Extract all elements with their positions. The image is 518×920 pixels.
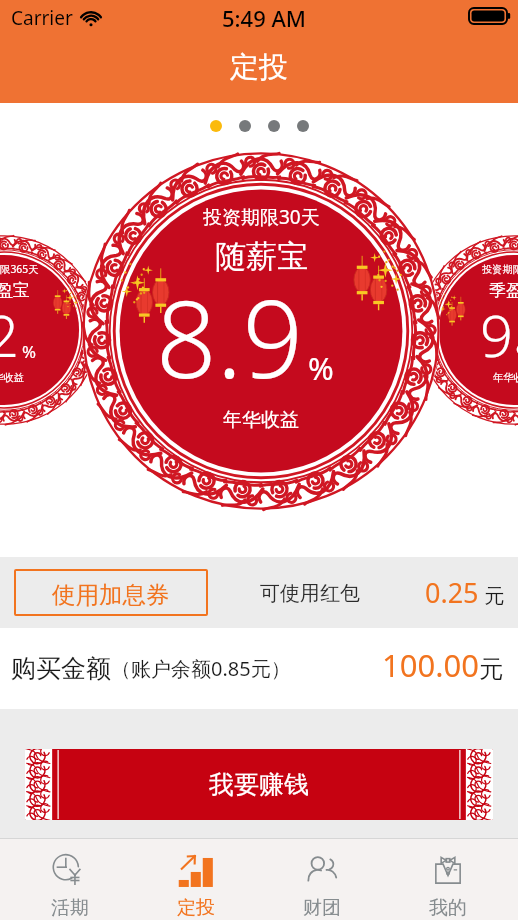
- staticText: 使用加息券: [52, 580, 170, 610]
- staticText: 定投: [177, 896, 215, 920]
- staticText: 财团: [303, 896, 341, 920]
- other: 我的: [429, 852, 467, 890]
- staticText: 长盈宝: [0, 280, 30, 301]
- staticText: 0.25: [425, 574, 479, 611]
- staticText: %: [308, 347, 334, 389]
- staticText: 年华收益: [493, 371, 518, 384]
- button[interactable]: 我的: [392, 839, 504, 920]
- staticText: 元: [479, 654, 503, 684]
- staticText: 元: [479, 582, 505, 609]
- staticText: 5:49 AM: [222, 3, 307, 33]
- staticText: %: [516, 340, 518, 363]
- staticText: 年华收益: [223, 408, 299, 432]
- other: 财团: [303, 852, 341, 890]
- button[interactable]: 定投: [140, 839, 252, 920]
- staticText: 8.9: [156, 265, 303, 409]
- staticText: 投资期限90天: [482, 262, 518, 276]
- button[interactable]: 财团: [266, 839, 378, 920]
- other: 活期: [51, 852, 89, 890]
- button[interactable]: 使用加息券: [14, 569, 208, 616]
- staticText: 定投: [230, 49, 288, 86]
- staticText: 购买金额: [11, 653, 111, 684]
- button[interactable]: 我要赚钱: [25, 749, 493, 820]
- staticText: 9: [480, 295, 513, 374]
- staticText: 我的: [429, 896, 467, 920]
- staticText: 100.00: [382, 644, 479, 686]
- staticText: 投资期限365天: [0, 262, 39, 276]
- staticText: %: [22, 340, 37, 363]
- staticText: 12: [0, 295, 19, 374]
- staticText: 我要赚钱: [209, 769, 309, 800]
- staticText: 随薪宝: [215, 237, 308, 276]
- other: 定投: [177, 852, 215, 890]
- staticText: 活期: [51, 896, 89, 920]
- button[interactable]: 活期: [14, 839, 126, 920]
- staticText: 投资期限30天: [203, 204, 320, 230]
- staticText: 季盈宝: [489, 280, 518, 301]
- staticText: （账户余额0.85元）: [111, 655, 291, 682]
- staticText: 年华收益: [0, 371, 25, 384]
- staticText: 可使用红包: [260, 581, 360, 606]
- staticText: Carrier: [11, 5, 73, 31]
